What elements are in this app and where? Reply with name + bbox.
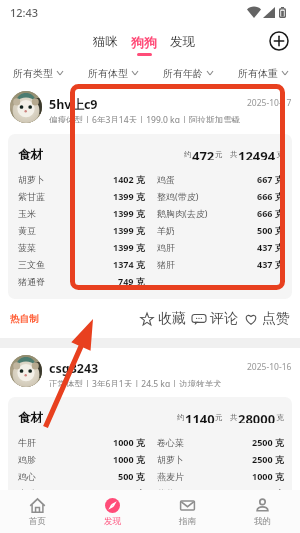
staticText: 紫甘蓝 — [18, 191, 45, 202]
staticText: 约 — [184, 150, 192, 159]
staticText: 三文鱼 — [18, 259, 45, 270]
staticText: 发现 — [104, 516, 121, 527]
staticText: 玉米 — [18, 208, 36, 219]
staticText: 卷心菜 — [157, 437, 184, 448]
button[interactable]: 所有体型 — [75, 56, 150, 82]
staticText: 所有年龄 — [163, 67, 203, 80]
staticText: 2500 克 — [252, 453, 284, 465]
staticText: 2025-10-16 — [247, 361, 292, 373]
staticText: 1000 克 — [252, 470, 284, 482]
staticText: 666 克 — [257, 207, 284, 219]
staticText: 共 — [230, 413, 238, 422]
staticText: 牛肝 — [18, 437, 36, 448]
staticText: 1399 克 — [113, 207, 145, 219]
button[interactable]: 猫咪 — [91, 34, 120, 56]
staticText: 燕麦片 — [157, 471, 184, 482]
staticText: 500 克 — [257, 224, 284, 236]
staticText: 667 克 — [257, 173, 284, 185]
staticText: 1399 克 — [113, 241, 145, 253]
staticText: 胡萝卜 — [18, 174, 45, 185]
staticText: 749 克 — [118, 275, 145, 287]
staticText: 猫咪 — [93, 34, 118, 50]
staticText: 食材 — [18, 147, 43, 160]
staticText: 评论 — [210, 310, 238, 328]
staticText: 胡萝卜 — [157, 454, 184, 465]
staticText: 1000 克 — [113, 436, 145, 448]
staticText: 2500 克 — [252, 436, 284, 448]
staticText: 首页 — [29, 516, 46, 527]
staticText: 克 — [276, 150, 284, 159]
staticText: 猪通脊 — [18, 276, 45, 287]
button[interactable]: 所有体重 — [225, 56, 300, 82]
staticText: 热自制 — [10, 313, 39, 325]
staticText: 共 — [230, 150, 238, 159]
staticText: 1402 克 — [113, 173, 145, 185]
staticText: 鸡蛋 — [157, 174, 175, 185]
staticText: 偏瘦体型 | 6年3月14天 | 199.0 kg | 阿拉斯加雪橇犬 — [49, 114, 247, 123]
staticText: 指南 — [179, 516, 196, 527]
staticText: 整鸡(带皮) — [157, 190, 199, 202]
staticText: 666 克 — [257, 190, 284, 202]
staticText: 472 — [192, 147, 215, 160]
staticText: 鹅胸肉(去皮) — [157, 207, 208, 219]
staticText: 食材 — [18, 410, 43, 423]
button[interactable]: 所有类型 — [0, 56, 75, 82]
staticText: 狗狗 — [131, 34, 157, 50]
staticText: 12:43 — [10, 5, 39, 20]
staticText: 1140 — [185, 410, 215, 423]
staticText: 紫薯 — [157, 488, 175, 490]
staticText: 羊奶 — [157, 225, 175, 236]
staticText: 所有类型 — [13, 67, 53, 80]
staticText: 鸡心 — [18, 471, 36, 482]
button[interactable]: Add — [266, 28, 292, 54]
button[interactable]: 收藏 — [140, 310, 186, 328]
button[interactable]: 狗狗 — [129, 34, 159, 56]
staticText: 2500 克 — [113, 487, 145, 490]
staticText: 鸡胗 — [18, 454, 36, 465]
staticText: 元 — [215, 413, 223, 422]
staticText: 28000 — [238, 410, 276, 423]
button[interactable]: 发现 — [168, 34, 197, 56]
button[interactable]: 首页 — [0, 490, 75, 533]
staticText: 2025-10-17 — [247, 97, 292, 109]
staticText: 1000 克 — [113, 453, 145, 465]
staticText: 牛舌 — [18, 488, 36, 490]
staticText: 约 — [177, 413, 185, 422]
button[interactable]: 评论 — [192, 310, 238, 328]
button[interactable]: 我的 — [225, 490, 300, 533]
staticText: 发现 — [170, 34, 195, 50]
staticText: 12494 — [238, 147, 276, 160]
staticText: 鸡肝 — [157, 242, 175, 253]
staticText: 1374 克 — [113, 258, 145, 270]
staticText: 猪肝 — [157, 259, 175, 270]
staticText: 克 — [276, 413, 284, 422]
staticText: csg3243 — [49, 360, 99, 377]
staticText: 所有体重 — [238, 67, 278, 80]
button[interactable]: 指南 — [150, 490, 225, 533]
staticText: 1399 克 — [113, 190, 145, 202]
staticText: 菠菜 — [18, 242, 36, 253]
staticText: 437 克 — [257, 258, 284, 270]
staticText: 500 克 — [118, 470, 145, 482]
staticText: 5hv上c9 — [49, 96, 98, 113]
staticText: 437 克 — [257, 241, 284, 253]
staticText: 黄豆 — [18, 225, 36, 236]
staticText: 1399 克 — [113, 224, 145, 236]
staticText: 元 — [215, 150, 223, 159]
staticText: 我的 — [254, 516, 271, 527]
staticText: 所有体型 — [88, 67, 128, 80]
button[interactable]: 点赞 — [244, 310, 290, 328]
staticText: 收藏 — [158, 310, 186, 328]
button[interactable]: 发现 — [75, 490, 150, 533]
staticText: 点赞 — [262, 310, 290, 328]
staticText: 正常体型 | 3年6月1天 | 24.5 kg | 边境牧羊犬 — [49, 378, 222, 387]
button[interactable]: 所有年龄 — [150, 56, 225, 82]
staticText: 1000 克 — [252, 487, 284, 490]
